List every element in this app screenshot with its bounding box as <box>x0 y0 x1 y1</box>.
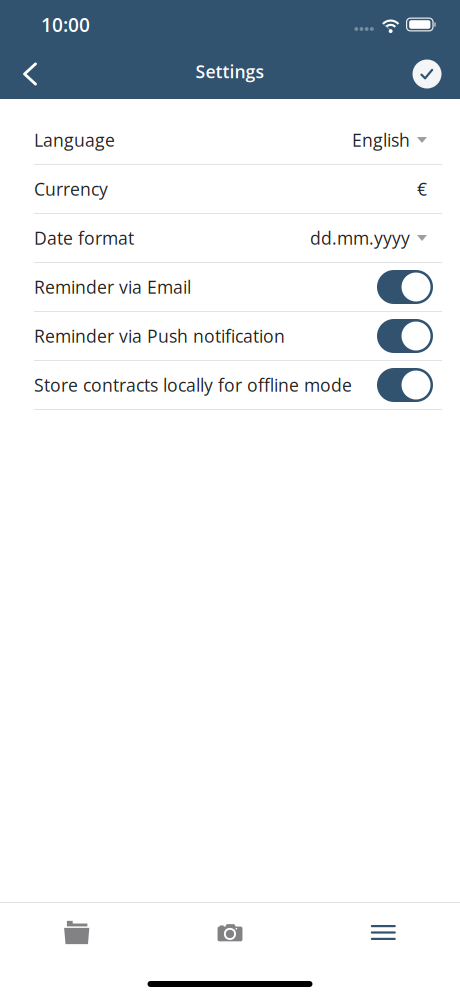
button[interactable]: Language <box>0 116 460 165</box>
staticText: Store contracts locally for offline mode <box>34 373 352 397</box>
staticText: Settings <box>195 59 264 83</box>
button[interactable]: Save <box>403 49 451 99</box>
staticText: € <box>417 177 427 201</box>
staticText: Date format <box>34 226 134 250</box>
staticText: English <box>352 128 410 152</box>
button[interactable]: Reminder via Email <box>0 263 460 312</box>
button[interactable]: Menu <box>307 903 460 962</box>
staticText: 10:00 <box>41 11 90 37</box>
button[interactable]: Date format <box>0 214 460 263</box>
staticText: Currency <box>34 177 108 201</box>
button[interactable]: Camera <box>153 903 307 962</box>
button[interactable]: Reminder via Push notification <box>0 312 460 361</box>
staticText: Reminder via Email <box>34 275 191 299</box>
button[interactable]: Currency <box>0 165 460 214</box>
staticText: dd.mm.yyyy <box>310 226 410 250</box>
button[interactable]: Documents <box>0 903 153 962</box>
staticText: Language <box>34 128 115 152</box>
button[interactable]: Store contracts locally for offline mode <box>0 361 460 410</box>
staticText: Reminder via Push notification <box>34 324 285 348</box>
button[interactable]: Back <box>6 49 54 99</box>
